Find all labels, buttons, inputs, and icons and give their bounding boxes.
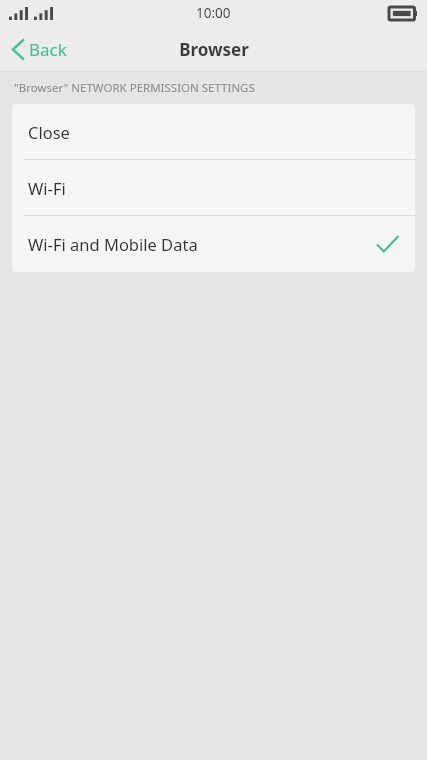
staticText: "Browser" NETWORK PERMISSION SETTINGS — [14, 80, 255, 96]
button[interactable]: Back — [0, 26, 79, 72]
staticText: Browser — [179, 38, 249, 61]
button[interactable]: Wi-Fi — [12, 160, 415, 216]
staticText: Wi-Fi — [28, 177, 66, 199]
staticText: Wi-Fi and Mobile Data — [28, 233, 198, 255]
button[interactable]: Close — [12, 104, 415, 160]
button[interactable]: Wi-Fi and Mobile Data — [12, 216, 415, 272]
staticText: Back — [29, 38, 67, 61]
staticText: 10:00 — [196, 4, 231, 22]
staticText: Close — [28, 121, 70, 143]
